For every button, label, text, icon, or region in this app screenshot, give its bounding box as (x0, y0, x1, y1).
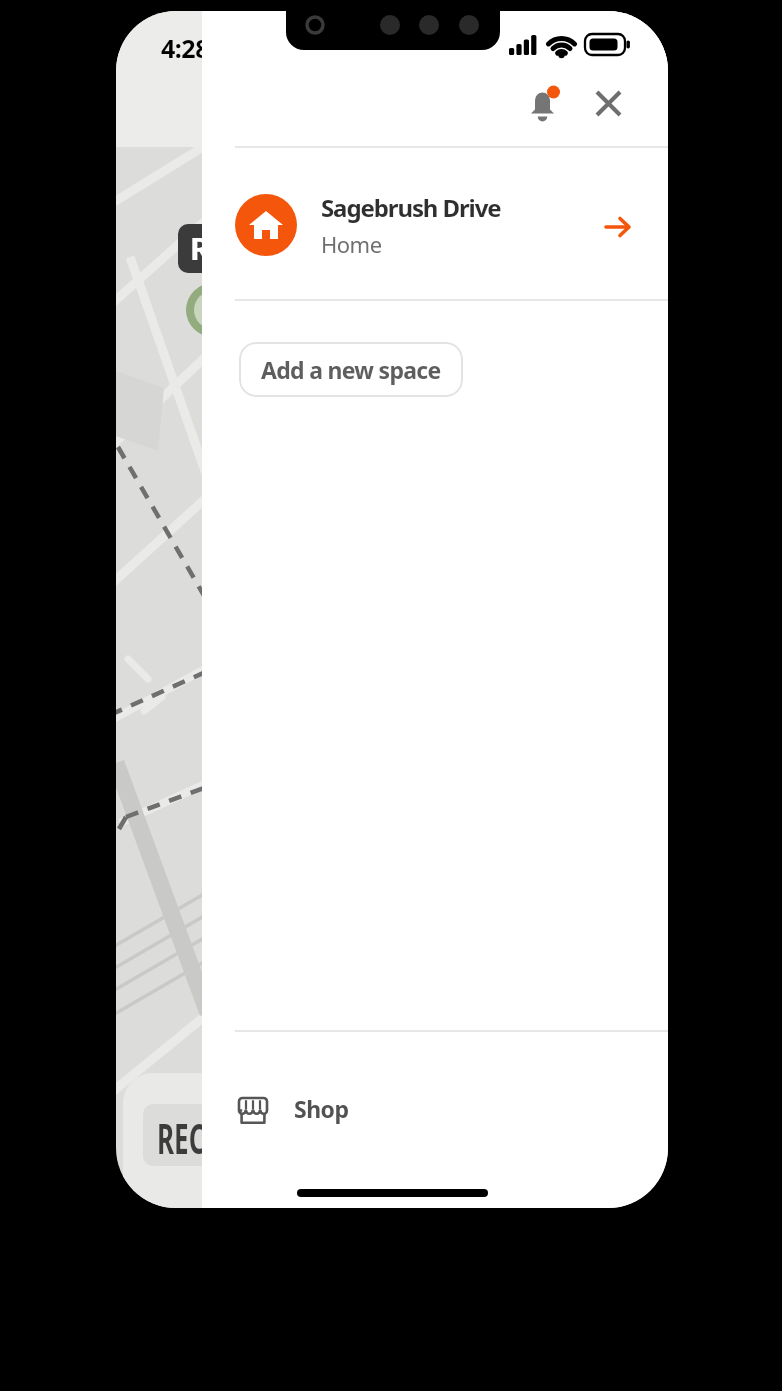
staticText: Shop (294, 1093, 349, 1124)
button[interactable]: Shop (235, 1086, 435, 1136)
staticText: REC (157, 1109, 206, 1166)
button[interactable] (584, 79, 633, 128)
staticText: Add a new space (261, 354, 441, 385)
button[interactable] (518, 79, 567, 128)
button[interactable]: Sagebrush Drive (235, 176, 668, 274)
staticText: Home (321, 229, 382, 259)
staticText: 4:28 (161, 31, 209, 65)
button[interactable]: Add a new space (239, 342, 463, 397)
staticText: R (190, 228, 210, 269)
staticText: Sagebrush Drive (321, 191, 501, 224)
